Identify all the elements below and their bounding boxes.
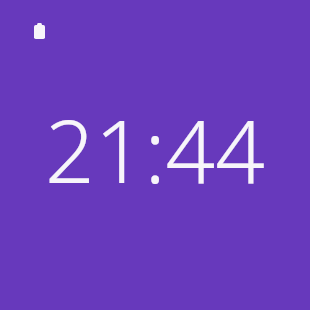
button[interactable]: Battery level [30,20,48,42]
staticText: 21:44 [45,90,265,208]
button[interactable]: Battery level [0,0,310,310]
